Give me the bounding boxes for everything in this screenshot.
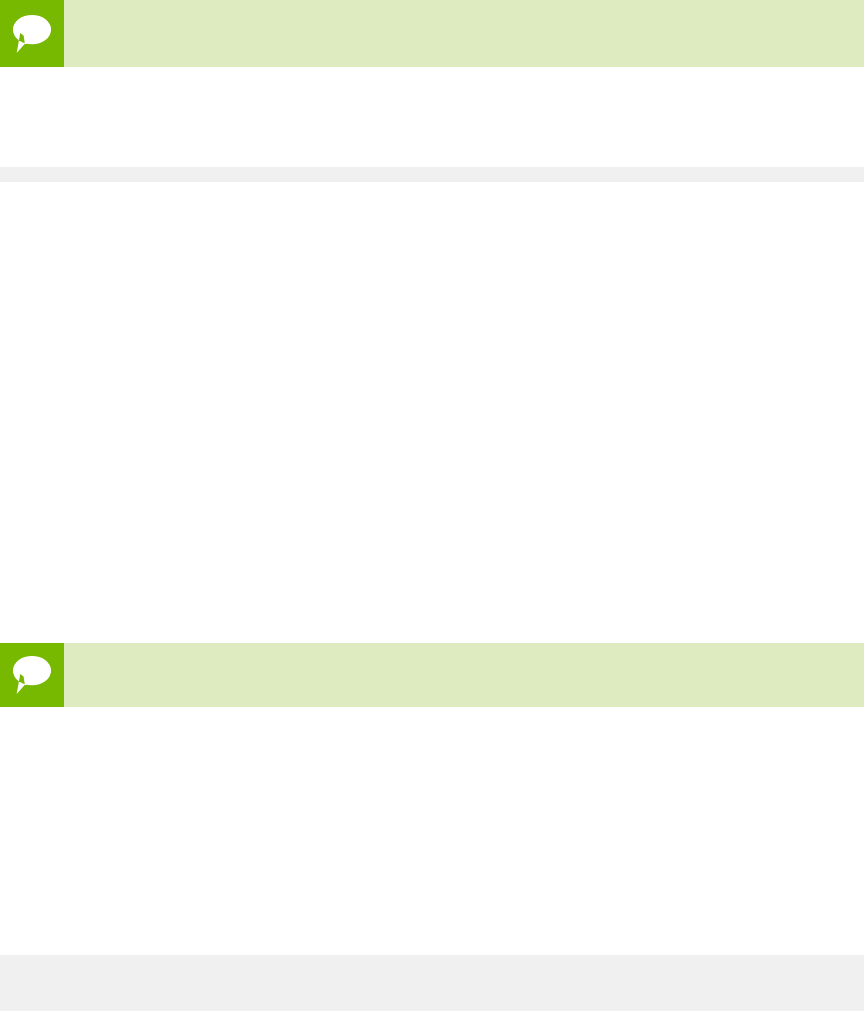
button[interactable]: Message [0,0,864,67]
button[interactable]: Message [0,643,864,707]
other: Message [0,0,64,67]
other: Message [0,643,64,707]
